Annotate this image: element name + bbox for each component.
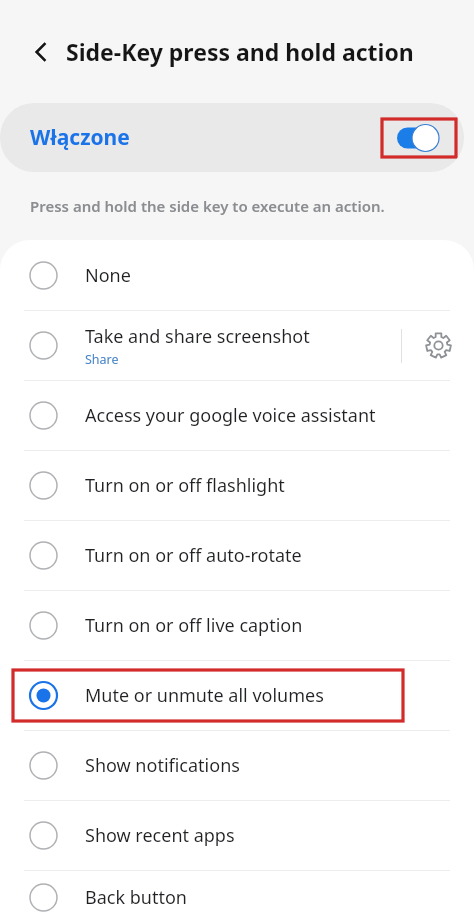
button[interactable]: Turn on or off flashlight (0, 451, 474, 520)
staticText: None (85, 263, 131, 288)
button[interactable]: Take and share screenshot (0, 311, 474, 380)
staticText: Access your google voice assistant (85, 403, 376, 428)
staticText: Show recent apps (85, 823, 235, 848)
staticText: Take and share screenshot (85, 324, 310, 349)
staticText: Side-Key press and hold action (66, 36, 414, 67)
staticText: Press and hold the side key to execute a… (30, 196, 385, 216)
staticText: Show notifications (85, 753, 240, 778)
staticText: Back button (85, 885, 187, 910)
button[interactable]: Show recent apps (0, 801, 474, 870)
staticText: Turn on or off auto-rotate (85, 543, 302, 568)
button[interactable]: Show notifications (0, 731, 474, 800)
button[interactable]: Back (22, 33, 60, 71)
button[interactable]: None (0, 240, 474, 310)
button[interactable]: Back button (0, 871, 474, 924)
button[interactable]: Włączone (0, 103, 464, 172)
button[interactable]: Turn on or off live caption (0, 591, 474, 660)
button[interactable]: Settings (402, 311, 474, 380)
staticText: Włączone (30, 123, 130, 152)
button[interactable]: Turn on or off auto-rotate (0, 521, 474, 590)
button[interactable]: Access your google voice assistant (0, 381, 474, 450)
button[interactable]: Mute or unmute all volumes (0, 661, 474, 730)
staticText: Share (85, 351, 119, 368)
staticText: Turn on or off flashlight (85, 473, 285, 498)
staticText: Turn on or off live caption (85, 613, 303, 638)
staticText: Mute or unmute all volumes (85, 683, 324, 708)
